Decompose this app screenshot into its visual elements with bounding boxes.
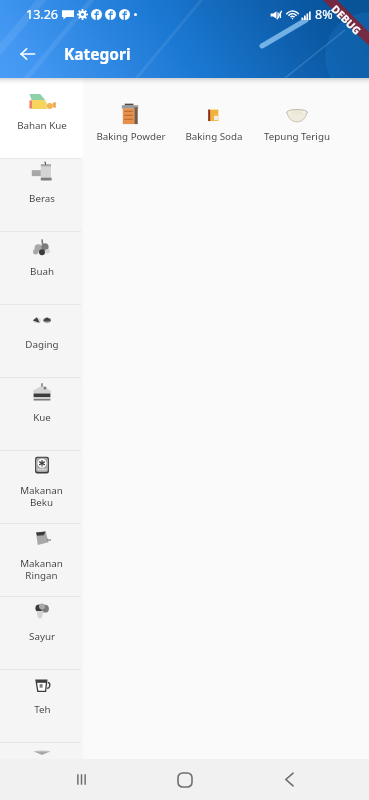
button[interactable]: Sayur — [0, 596, 83, 669]
button[interactable]: Back — [4, 30, 51, 77]
staticText: Kue — [33, 411, 51, 424]
button[interactable]: Tepung Terigu — [255, 103, 338, 143]
staticText: Buah — [30, 265, 54, 278]
button[interactable]: Baking Powder — [89, 103, 172, 143]
staticText: Sayur — [29, 630, 55, 643]
button[interactable]: Back — [237, 759, 341, 800]
staticText: Baking Powder — [96, 130, 166, 143]
staticText: Bahan Kue — [17, 119, 67, 132]
staticText: Teh — [34, 703, 51, 716]
staticText: Makanan Ringan — [20, 557, 63, 582]
button[interactable]: Teh — [0, 669, 83, 742]
button[interactable]: Baking Soda — [172, 103, 255, 143]
button[interactable]: Makanan Ringan — [0, 523, 83, 596]
staticText: Baking Soda — [185, 130, 243, 143]
staticText: Kategori — [64, 43, 131, 64]
staticText: Beras — [29, 192, 55, 205]
staticText: DEBUG — [328, 2, 365, 38]
button[interactable]: Buah — [0, 231, 83, 304]
button[interactable]: Tepung — [0, 742, 83, 759]
staticText: Daging — [25, 338, 59, 351]
button[interactable]: Beras — [0, 158, 83, 231]
button[interactable]: Kue — [0, 377, 83, 450]
button[interactable]: Bahan Kue — [0, 78, 83, 158]
button[interactable]: Daging — [0, 304, 83, 377]
staticText: 13.26 — [26, 6, 58, 23]
staticText: Makanan Beku — [20, 484, 63, 509]
button[interactable]: Recent apps — [29, 759, 133, 800]
staticText: 8% — [315, 6, 333, 23]
button[interactable]: Home — [133, 759, 237, 800]
staticText: Tepung Terigu — [264, 130, 330, 143]
button[interactable]: Makanan Beku — [0, 450, 83, 523]
